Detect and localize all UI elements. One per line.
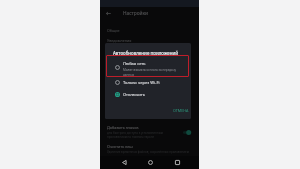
staticText: для быстрого доступа к установленным при… <box>107 131 164 139</box>
staticText: Добавить значок <box>107 125 139 130</box>
staticText: Может взиматься плата за передачу данных <box>123 68 177 76</box>
button[interactable]: ОТМЕНА <box>171 106 191 115</box>
button[interactable]: Back <box>103 8 113 18</box>
staticText: Общие <box>107 28 120 33</box>
staticText: Очистить кеш <box>107 144 133 149</box>
button[interactable]: Back <box>120 158 129 167</box>
button[interactable]: Добавить значок <box>100 123 199 140</box>
button[interactable]: Очистить кеш <box>100 142 199 155</box>
staticText: Автообновление приложений <box>113 50 179 56</box>
button[interactable]: Home <box>146 158 155 167</box>
button[interactable]: Любая сеть <box>105 59 191 77</box>
staticText: ОТМЕНА <box>173 108 189 113</box>
staticText: Только через Wi-Fi <box>123 80 160 86</box>
button[interactable]: Отключить <box>105 90 191 99</box>
staticText: Уведомления <box>107 38 132 43</box>
staticText: Отключить <box>123 92 145 98</box>
button[interactable]: Toggle add icon <box>180 127 194 136</box>
staticText: Любая сеть <box>123 61 146 67</box>
button[interactable]: Recent apps <box>173 158 182 167</box>
button[interactable]: Только через Wi-Fi <box>105 78 191 87</box>
staticText: Настройки <box>123 10 149 17</box>
staticText: Удаление временных файлов, сохранённых п… <box>107 150 189 154</box>
